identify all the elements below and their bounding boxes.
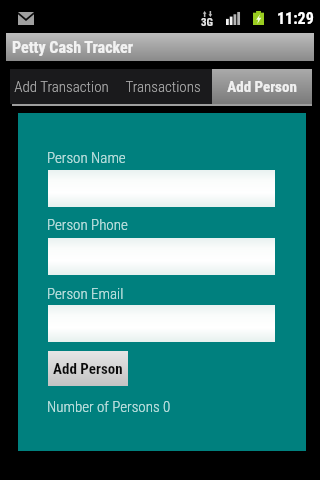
staticText: Add Person: [53, 360, 123, 378]
staticText: Number of Persons 0: [47, 398, 171, 416]
staticText: Petty Cash Tracker: [12, 38, 133, 57]
button[interactable]: Transactions: [113, 69, 212, 104]
other: Battery charging: [253, 11, 264, 25]
staticText: Person Phone: [47, 216, 128, 234]
button[interactable]: [48, 170, 275, 207]
staticText: 3G: [201, 16, 214, 29]
other: Mobile data 3G: [202, 11, 213, 17]
staticText: Person Name: [47, 149, 126, 167]
other: Signal strength: [226, 12, 241, 25]
staticText: Add Person: [227, 78, 297, 96]
staticText: Transactions: [125, 78, 201, 96]
staticText: Add Transaction: [14, 78, 109, 96]
button[interactable]: [48, 238, 275, 275]
staticText: 11:29: [277, 9, 314, 28]
button[interactable]: Add Transaction: [10, 69, 113, 104]
button[interactable]: Add Person: [48, 351, 128, 386]
other: New email notification: [18, 12, 34, 25]
button[interactable]: Add Person: [212, 69, 312, 104]
staticText: Person Email: [47, 285, 124, 303]
button[interactable]: [48, 305, 275, 342]
